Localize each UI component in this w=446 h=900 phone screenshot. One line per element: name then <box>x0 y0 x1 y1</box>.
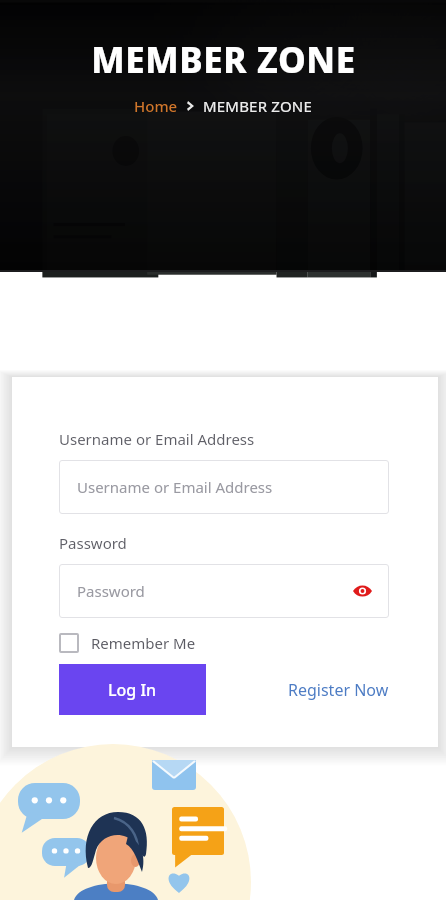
button[interactable]: Register Now <box>288 673 389 707</box>
staticText: Password <box>59 533 127 553</box>
staticText: Remember Me <box>91 633 196 653</box>
button[interactable]: Show password <box>349 578 375 604</box>
staticText: Home <box>134 96 178 116</box>
staticText: MEMBER ZONE <box>91 36 356 84</box>
staticText: Username or Email Address <box>77 477 273 497</box>
button[interactable]: Password <box>59 564 389 618</box>
button[interactable]: Username or Email Address <box>59 460 389 514</box>
button[interactable]: Log In <box>59 664 206 715</box>
staticText: Register Now <box>288 679 389 701</box>
button[interactable]: Remember Me <box>59 633 196 653</box>
staticText: Log In <box>108 679 157 701</box>
staticText: Password <box>77 581 145 601</box>
button[interactable]: Home <box>134 96 178 116</box>
staticText: MEMBER ZONE <box>203 96 312 116</box>
staticText: Username or Email Address <box>59 429 255 449</box>
